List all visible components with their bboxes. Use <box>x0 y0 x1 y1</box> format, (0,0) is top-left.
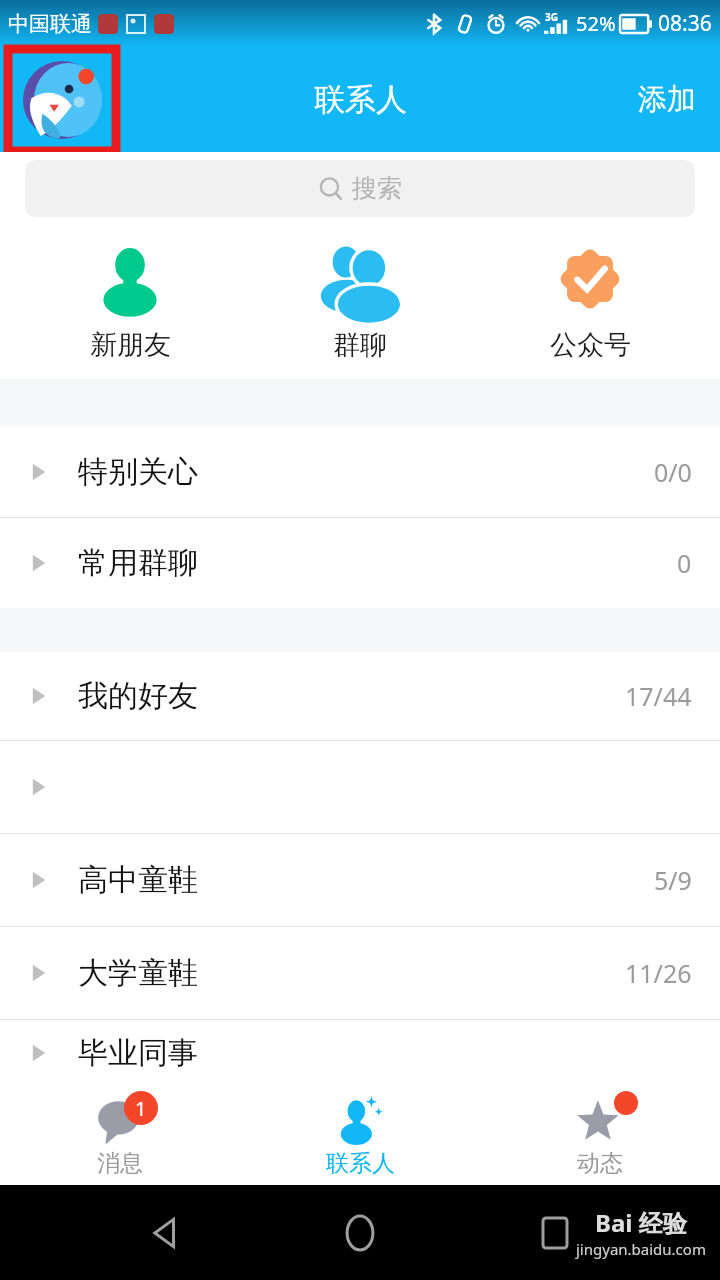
button[interactable]: 联系人 <box>240 1085 480 1185</box>
button[interactable]: Back <box>135 1203 195 1263</box>
staticText: 特别关心 <box>78 453 198 491</box>
staticText: 5/9 <box>654 863 692 897</box>
staticText: 动态 <box>577 1149 623 1178</box>
staticText: 搜索 <box>352 173 402 204</box>
button[interactable]: 1 <box>0 1085 240 1185</box>
staticText: 大学童鞋 <box>78 954 198 992</box>
staticText: 新朋友 <box>90 328 171 362</box>
staticText: 联系人 <box>314 80 407 119</box>
button[interactable]: Home <box>330 1203 390 1263</box>
button[interactable]: Recents <box>525 1203 585 1263</box>
staticText: 17/44 <box>625 679 692 713</box>
button[interactable]: 群聊 <box>260 224 460 362</box>
button[interactable]: 搜索 <box>25 160 695 217</box>
button[interactable]: Profile <box>8 49 116 151</box>
staticText: 11/26 <box>625 956 692 990</box>
staticText: 52% <box>576 10 616 37</box>
staticText: 消息 <box>97 1149 143 1178</box>
staticText: 群聊 <box>333 328 387 362</box>
button[interactable]: 新朋友 <box>30 224 230 362</box>
button[interactable]: 毕业同事 <box>0 1020 720 1085</box>
staticText: 中国联通 <box>8 11 92 37</box>
staticText: 0 <box>677 546 692 580</box>
staticText: 高中童鞋 <box>78 861 198 899</box>
staticText: 公众号 <box>550 328 631 362</box>
staticText: 联系人 <box>326 1149 395 1178</box>
button[interactable]: 常用群聊 <box>0 518 720 608</box>
staticText: 我的好友 <box>78 677 198 715</box>
staticText: 常用群聊 <box>78 544 198 582</box>
staticText: 毕业同事 <box>78 1034 198 1072</box>
staticText: 添加 <box>638 81 696 118</box>
button[interactable]: 动态 <box>480 1085 720 1185</box>
button[interactable]: 我的好友 <box>0 652 720 740</box>
staticText: 0/0 <box>654 455 692 489</box>
button[interactable]: 公众号 <box>490 224 690 362</box>
button[interactable]: 特别关心 <box>0 426 720 517</box>
staticText: 08:36 <box>658 9 712 38</box>
button[interactable]: 添加 <box>614 65 720 134</box>
staticText: 1 <box>135 1095 147 1122</box>
button[interactable]: 大学童鞋 <box>0 927 720 1019</box>
staticText: Bai 经验 <box>595 1206 687 1239</box>
button[interactable]: 高中童鞋 <box>0 834 720 926</box>
staticText: jingyan.baidu.com <box>576 1239 706 1259</box>
staticText: 3G <box>545 10 558 24</box>
